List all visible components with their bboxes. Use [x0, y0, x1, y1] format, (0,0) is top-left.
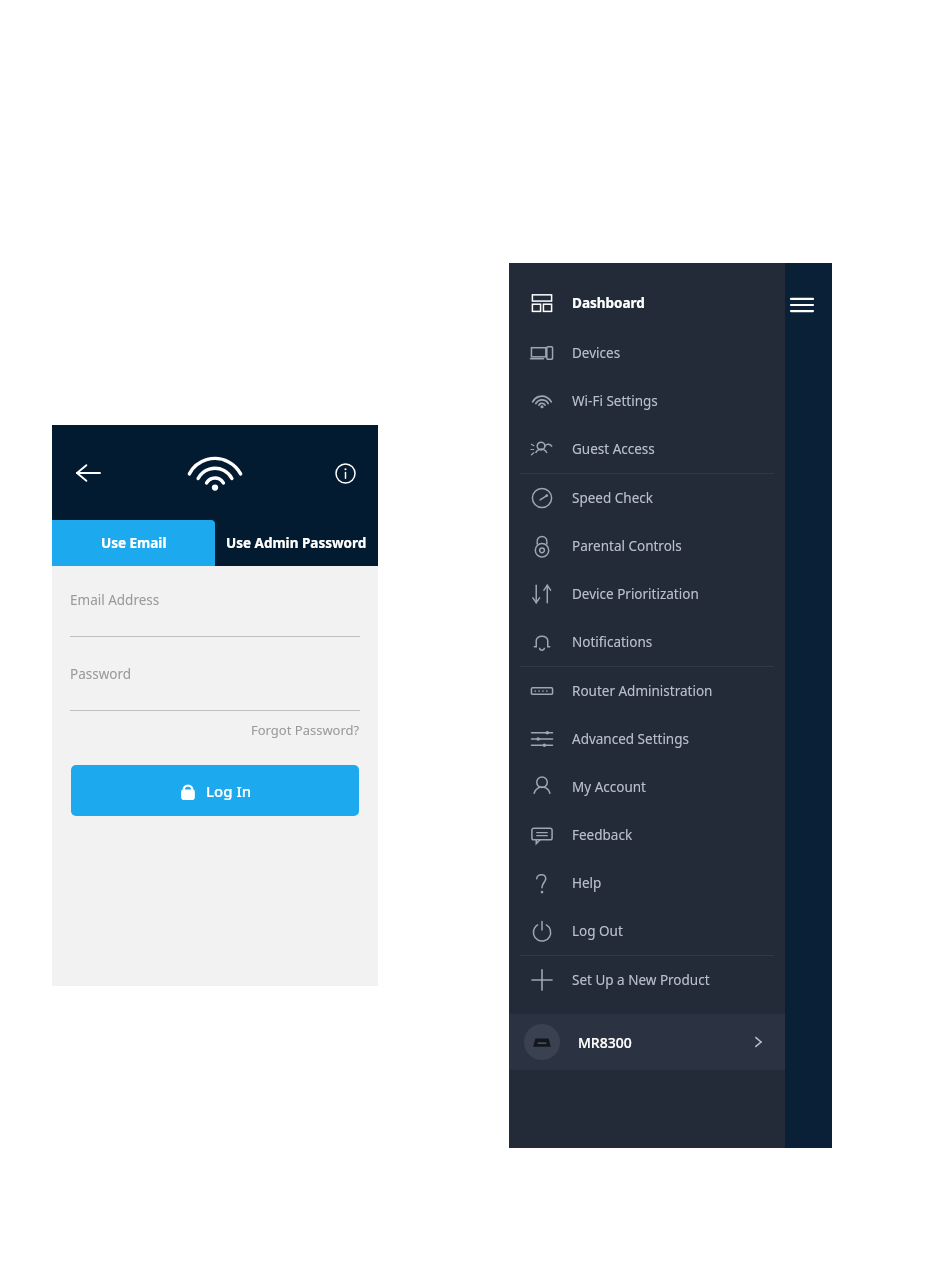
- button[interactable]: Feedback: [509, 811, 785, 859]
- button[interactable]: Use Email: [52, 520, 215, 566]
- staticText: Set Up a New Product: [572, 971, 710, 989]
- staticText: MR8300: [578, 1033, 632, 1052]
- staticText: Use Email: [101, 534, 167, 552]
- button[interactable]: Wi-Fi Settings: [509, 377, 785, 425]
- button[interactable]: Advanced Settings: [509, 715, 785, 763]
- button[interactable]: Device Prioritization: [509, 570, 785, 618]
- staticText: Dashboard: [572, 294, 645, 312]
- staticText: Speed Check: [572, 489, 653, 507]
- staticText: Wi-Fi Settings: [572, 392, 658, 410]
- button[interactable]: Menu: [780, 283, 824, 327]
- button[interactable]: Speed Check: [509, 474, 785, 522]
- button[interactable]: Help: [509, 859, 785, 907]
- staticText: Devices: [572, 344, 621, 362]
- button[interactable]: My Account: [509, 763, 785, 811]
- button[interactable]: Info: [324, 452, 366, 494]
- staticText: Advanced Settings: [572, 730, 689, 748]
- button[interactable]: Log Out: [509, 907, 785, 955]
- button[interactable]: Devices: [509, 329, 785, 377]
- button[interactable]: Use Admin Password: [215, 520, 378, 566]
- staticText: Parental Controls: [572, 537, 682, 555]
- staticText: Log In: [206, 781, 252, 801]
- button[interactable]: Dashboard: [509, 277, 785, 329]
- button[interactable]: Notifications: [509, 618, 785, 666]
- button[interactable]: Log In: [71, 765, 359, 816]
- staticText: Password: [70, 665, 132, 683]
- staticText: Device Prioritization: [572, 585, 699, 603]
- button[interactable]: MR8300: [509, 1014, 785, 1070]
- staticText: Help: [572, 874, 602, 892]
- button[interactable]: Guest Access: [509, 425, 785, 473]
- staticText: Email Address: [70, 591, 160, 609]
- staticText: Router Administration: [572, 682, 713, 700]
- staticText: Notifications: [572, 633, 653, 651]
- button[interactable]: Router Administration: [509, 667, 785, 715]
- button[interactable]: Forgot Password?: [251, 721, 360, 739]
- button[interactable]: Set Up a New Product: [509, 956, 785, 1004]
- button[interactable]: Back: [66, 451, 110, 495]
- staticText: Use Admin Password: [226, 534, 367, 552]
- staticText: My Account: [572, 778, 646, 796]
- staticText: Guest Access: [572, 440, 655, 458]
- button[interactable]: Parental Controls: [509, 522, 785, 570]
- staticText: Feedback: [572, 826, 633, 844]
- staticText: Log Out: [572, 922, 623, 940]
